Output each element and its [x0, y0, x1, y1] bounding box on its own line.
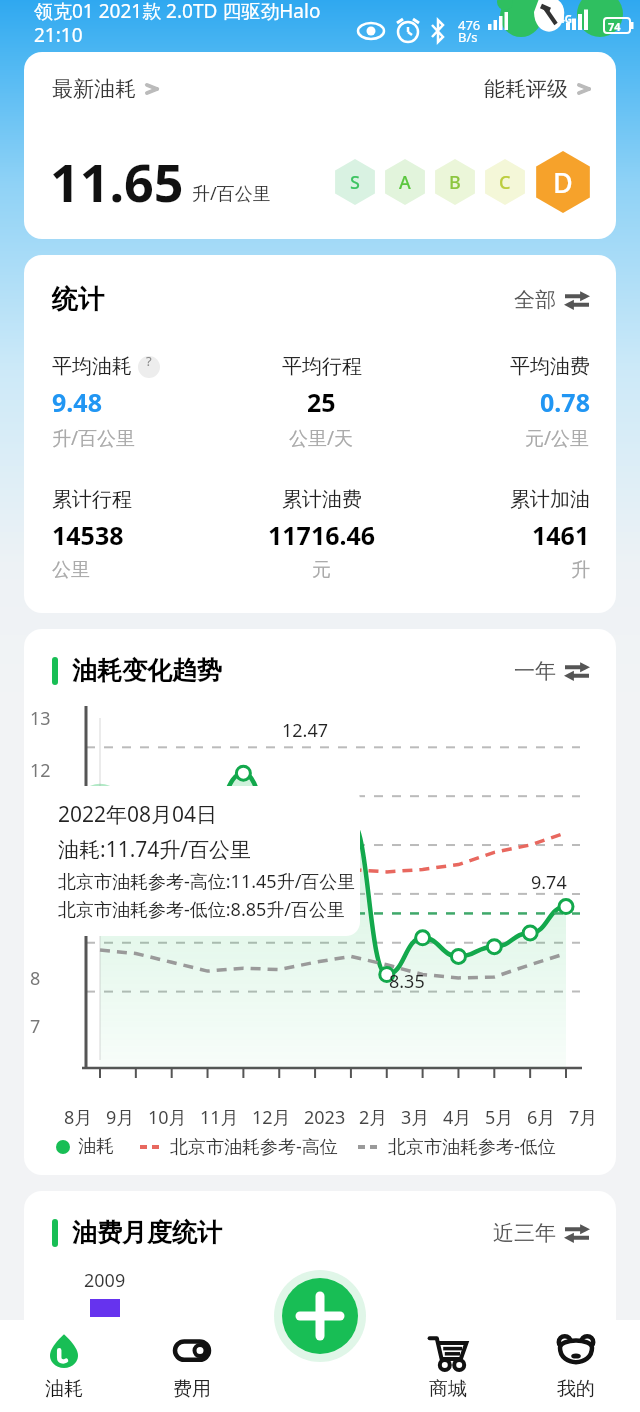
button[interactable]: 商城 — [384, 1320, 512, 1412]
staticText: 2023 — [304, 1105, 346, 1130]
button[interactable]: 最新油耗 — [52, 76, 158, 102]
staticText: 8月 — [64, 1105, 93, 1130]
staticText: 8 — [30, 966, 41, 991]
staticText: 10月 — [148, 1105, 187, 1130]
button[interactable]: 平均行程 — [232, 354, 411, 451]
staticText: D — [553, 164, 573, 201]
staticText: 11716.46 — [268, 518, 376, 552]
button[interactable]: 累计加油 — [411, 487, 590, 582]
staticText: 升/百公里 — [192, 181, 271, 206]
button[interactable]: 累计油费 — [232, 487, 411, 582]
staticText: 476 — [458, 16, 481, 34]
staticText: ? — [146, 356, 152, 370]
button[interactable]: 累计行程 — [52, 487, 232, 582]
staticText: 北京市油耗参考-低位 — [388, 1134, 556, 1159]
staticText: 4G — [559, 12, 572, 26]
staticText: 6月 — [527, 1105, 556, 1130]
staticText: 元/公里 — [525, 425, 590, 451]
other: 切换 — [564, 1222, 590, 1244]
staticText: 油费月度统计 — [72, 1217, 222, 1248]
staticText: 5月 — [485, 1105, 514, 1130]
staticText: 北京市油耗参考-高位:11.45升/百公里 — [58, 869, 356, 894]
staticText: 我的 — [557, 1377, 595, 1401]
staticText: 21:10 — [34, 22, 83, 48]
staticText: 3月 — [401, 1105, 430, 1130]
button[interactable]: 我的 — [512, 1320, 640, 1412]
staticText: 4月 — [443, 1105, 472, 1130]
staticText: 8.35 — [389, 969, 425, 994]
button[interactable]: 能耗评级 — [484, 76, 590, 102]
button[interactable]: 平均油耗 — [52, 354, 232, 451]
staticText: 领克01 2021款 2.0TD 四驱劲Halo — [34, 0, 321, 24]
staticText: 9月 — [106, 1105, 135, 1130]
staticText: 北京市油耗参考-低位:8.85升/百公里 — [58, 897, 346, 922]
staticText: C — [499, 170, 511, 195]
button[interactable]: 费用 — [128, 1320, 256, 1412]
other: 切换 — [564, 660, 590, 682]
staticText: 0.78 — [540, 385, 590, 419]
button[interactable]: A — [382, 159, 428, 205]
button[interactable]: S — [332, 159, 378, 205]
staticText: 平均行程 — [282, 354, 362, 379]
button[interactable]: D — [532, 151, 594, 213]
staticText: 升 — [571, 558, 590, 582]
staticText: 7月 — [569, 1105, 598, 1130]
staticText: 最新油耗 — [52, 76, 136, 102]
staticText: 元 — [312, 558, 331, 582]
staticText: 1461 — [532, 518, 590, 552]
staticText: 油耗 — [78, 1135, 114, 1158]
staticText: 11.65 — [50, 146, 184, 217]
staticText: 能耗评级 — [484, 76, 568, 102]
button[interactable]: 记一笔 — [274, 1270, 366, 1362]
staticText: 北京市油耗参考-高位 — [170, 1134, 338, 1159]
staticText: 2月 — [359, 1105, 388, 1130]
other: 切换 — [564, 289, 590, 311]
staticText: 11月 — [200, 1105, 239, 1130]
staticText: 一年 — [514, 658, 556, 684]
staticText: 公里/天 — [289, 425, 354, 451]
button[interactable]: B — [432, 159, 478, 205]
button[interactable]: 近三年 — [493, 1220, 590, 1246]
staticText: 公里 — [52, 558, 90, 582]
staticText: 累计加油 — [510, 487, 590, 512]
staticText: B — [449, 170, 461, 195]
staticText: 13 — [30, 706, 51, 731]
staticText: 12 — [30, 758, 51, 783]
staticText: 油耗:11.74升/百公里 — [58, 835, 252, 864]
staticText: 累计油费 — [282, 487, 362, 512]
staticText: 12.47 — [282, 718, 329, 743]
staticText: 升/百公里 — [52, 425, 136, 451]
button[interactable]: 油耗 — [0, 1320, 128, 1412]
staticText: 商城 — [429, 1377, 467, 1401]
button[interactable]: C — [482, 159, 528, 205]
staticText: S — [350, 170, 360, 195]
staticText: B/s — [458, 28, 478, 46]
button[interactable]: 一年 — [514, 658, 590, 684]
staticText: 近三年 — [493, 1220, 556, 1246]
staticText: 平均油费 — [510, 354, 590, 379]
staticText: 平均油耗 — [52, 354, 132, 379]
staticText: 2022年08月04日 — [58, 800, 218, 829]
staticText: 9.48 — [52, 385, 102, 419]
staticText: 2009 — [84, 1268, 126, 1293]
staticText: A — [399, 170, 411, 195]
staticText: 25 — [307, 385, 336, 419]
staticText: 费用 — [173, 1377, 211, 1401]
staticText: 油耗变化趋势 — [72, 655, 222, 686]
staticText: 累计行程 — [52, 487, 132, 512]
staticText: 7 — [30, 1014, 41, 1039]
staticText: 9.74 — [531, 870, 567, 895]
staticText: 14538 — [52, 518, 124, 552]
staticText: 全部 — [514, 287, 556, 313]
button[interactable]: 全部 — [514, 287, 590, 313]
staticText: 统计 — [52, 283, 104, 316]
staticText: 12月 — [252, 1105, 291, 1130]
staticText: 油耗 — [45, 1377, 83, 1401]
staticText: 74 — [608, 19, 621, 34]
button[interactable]: 平均油费 — [411, 354, 590, 451]
